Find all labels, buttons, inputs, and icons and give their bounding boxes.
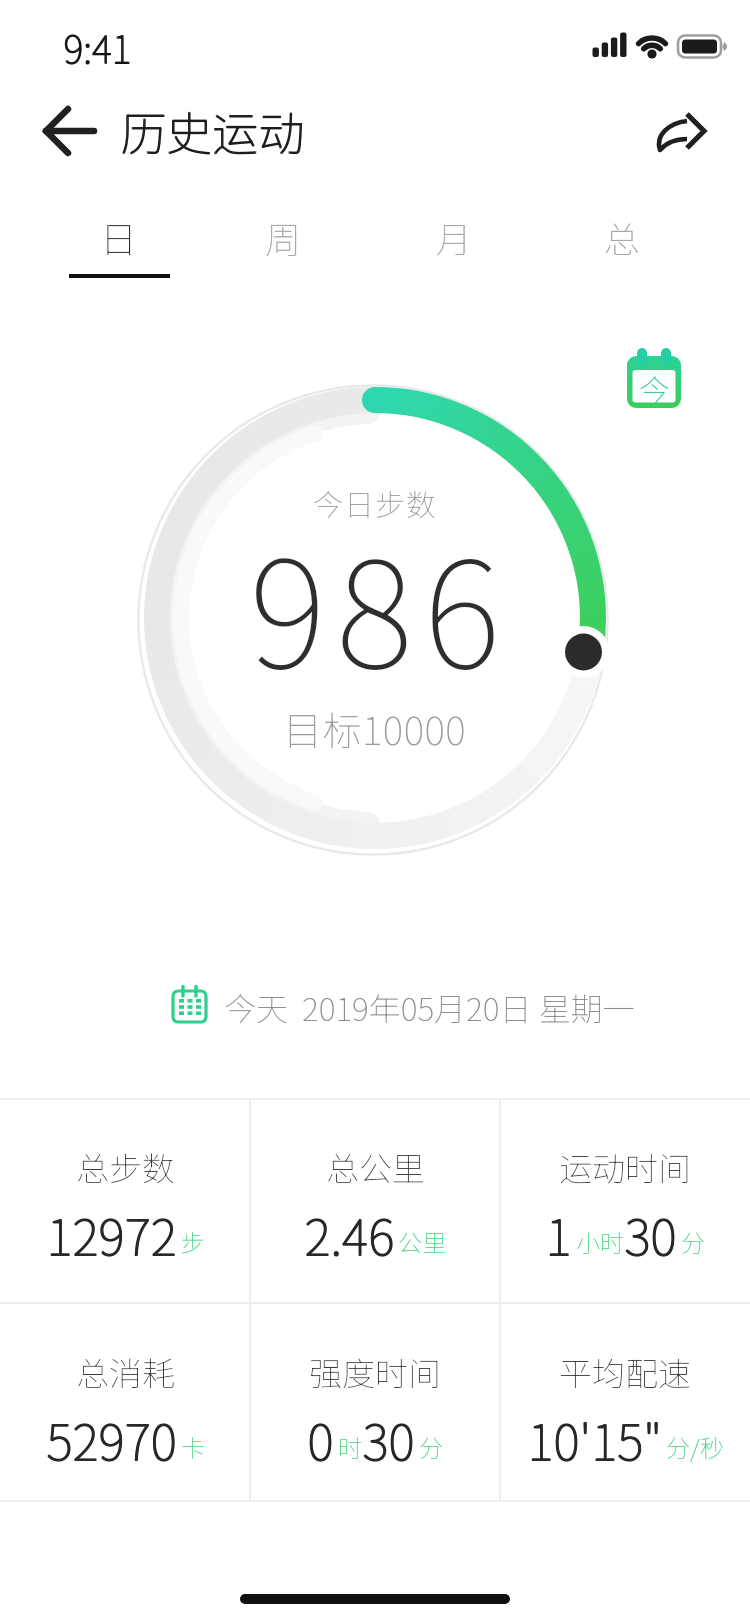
staticText: 公里 bbox=[398, 1224, 446, 1259]
staticText: 30 bbox=[363, 1403, 416, 1475]
staticText: 2.46 bbox=[305, 1198, 395, 1270]
staticText: 总公里 bbox=[326, 1143, 425, 1191]
staticText: 月 bbox=[436, 211, 473, 263]
button[interactable]: 月 bbox=[399, 206, 509, 291]
staticText: 10'15" bbox=[528, 1403, 663, 1475]
staticText: 12972 bbox=[46, 1197, 177, 1269]
staticText: 日 bbox=[100, 210, 137, 264]
button[interactable]: 12972 bbox=[1, 1193, 249, 1273]
staticText: 1 bbox=[546, 1197, 573, 1269]
staticText: 运动时间 bbox=[559, 1143, 691, 1191]
staticText: 986 bbox=[249, 496, 511, 686]
staticText: 9:41 bbox=[63, 19, 132, 69]
staticText: 历史运动 bbox=[120, 98, 304, 160]
staticText: 52970 bbox=[47, 1403, 178, 1475]
button[interactable] bbox=[645, 100, 720, 162]
button[interactable]: 日 bbox=[63, 206, 173, 291]
staticText: 30 bbox=[363, 1402, 416, 1474]
staticText: 1 bbox=[546, 1198, 573, 1270]
staticText: 历史运动 bbox=[121, 98, 305, 160]
staticText: 小时 bbox=[576, 1224, 624, 1259]
staticText: 目标10000 bbox=[283, 700, 467, 756]
staticText: 分 bbox=[419, 1429, 443, 1464]
staticText: 30 bbox=[624, 1198, 677, 1270]
staticText: 总 bbox=[604, 211, 641, 263]
staticText: 52970 bbox=[46, 1403, 177, 1475]
staticText: 10'15" bbox=[528, 1402, 663, 1474]
button[interactable]: 52970 bbox=[1, 1398, 249, 1478]
staticText: 30 bbox=[362, 1403, 415, 1475]
staticText: 10'15" bbox=[527, 1403, 662, 1475]
staticText: 时 bbox=[338, 1429, 362, 1464]
staticText: 30 bbox=[624, 1197, 677, 1269]
staticText: 52970 bbox=[46, 1402, 177, 1474]
staticText: 2.46 bbox=[304, 1198, 394, 1270]
staticText: 总步数 bbox=[76, 1143, 175, 1191]
staticText: 12972 bbox=[47, 1197, 178, 1269]
staticText: 9:41 bbox=[64, 19, 133, 69]
button[interactable]: 0 bbox=[251, 1398, 499, 1478]
staticText: 12972 bbox=[47, 1198, 178, 1270]
staticText: 今 bbox=[639, 366, 670, 406]
staticText: 0 bbox=[308, 1402, 335, 1474]
staticText: 卡 bbox=[181, 1429, 205, 1464]
staticText: 今天 2019年05月20日 星期一 bbox=[224, 984, 635, 1028]
button[interactable]: 总 bbox=[567, 206, 677, 291]
staticText: 0 bbox=[307, 1402, 334, 1474]
staticText: 平均配速 bbox=[559, 1348, 691, 1396]
staticText: 分/秒 bbox=[666, 1429, 724, 1464]
staticText: 强度时间 bbox=[309, 1348, 441, 1396]
staticText: 30 bbox=[625, 1197, 678, 1269]
staticText: 历史运动 bbox=[121, 97, 305, 159]
staticText: 总消耗 bbox=[76, 1348, 175, 1396]
staticText: 2.46 bbox=[304, 1197, 394, 1269]
staticText: 历史运动 bbox=[120, 97, 304, 159]
staticText: 今日步数 bbox=[313, 481, 437, 524]
staticText: 分 bbox=[681, 1224, 705, 1259]
button[interactable]: 今 bbox=[623, 344, 687, 414]
button[interactable]: 2.46 bbox=[251, 1193, 499, 1273]
staticText: 10'15" bbox=[527, 1402, 662, 1474]
staticText: 12972 bbox=[46, 1198, 177, 1270]
staticText: 1 bbox=[545, 1197, 572, 1269]
button[interactable]: 周 bbox=[228, 206, 338, 291]
staticText: 2.46 bbox=[305, 1197, 395, 1269]
button[interactable]: 10'15" bbox=[501, 1398, 749, 1478]
button[interactable]: 1 bbox=[501, 1193, 749, 1273]
staticText: 30 bbox=[625, 1198, 678, 1270]
staticText: 0 bbox=[308, 1403, 335, 1475]
staticText: 周 bbox=[265, 211, 302, 263]
staticText: 52970 bbox=[47, 1402, 178, 1474]
staticText: 30 bbox=[362, 1402, 415, 1474]
staticText: 9:41 bbox=[64, 20, 133, 70]
staticText: 步 bbox=[181, 1224, 205, 1259]
staticText: 9:41 bbox=[63, 20, 132, 70]
staticText: 0 bbox=[307, 1403, 334, 1475]
staticText: 1 bbox=[545, 1198, 572, 1270]
button[interactable] bbox=[28, 103, 104, 159]
